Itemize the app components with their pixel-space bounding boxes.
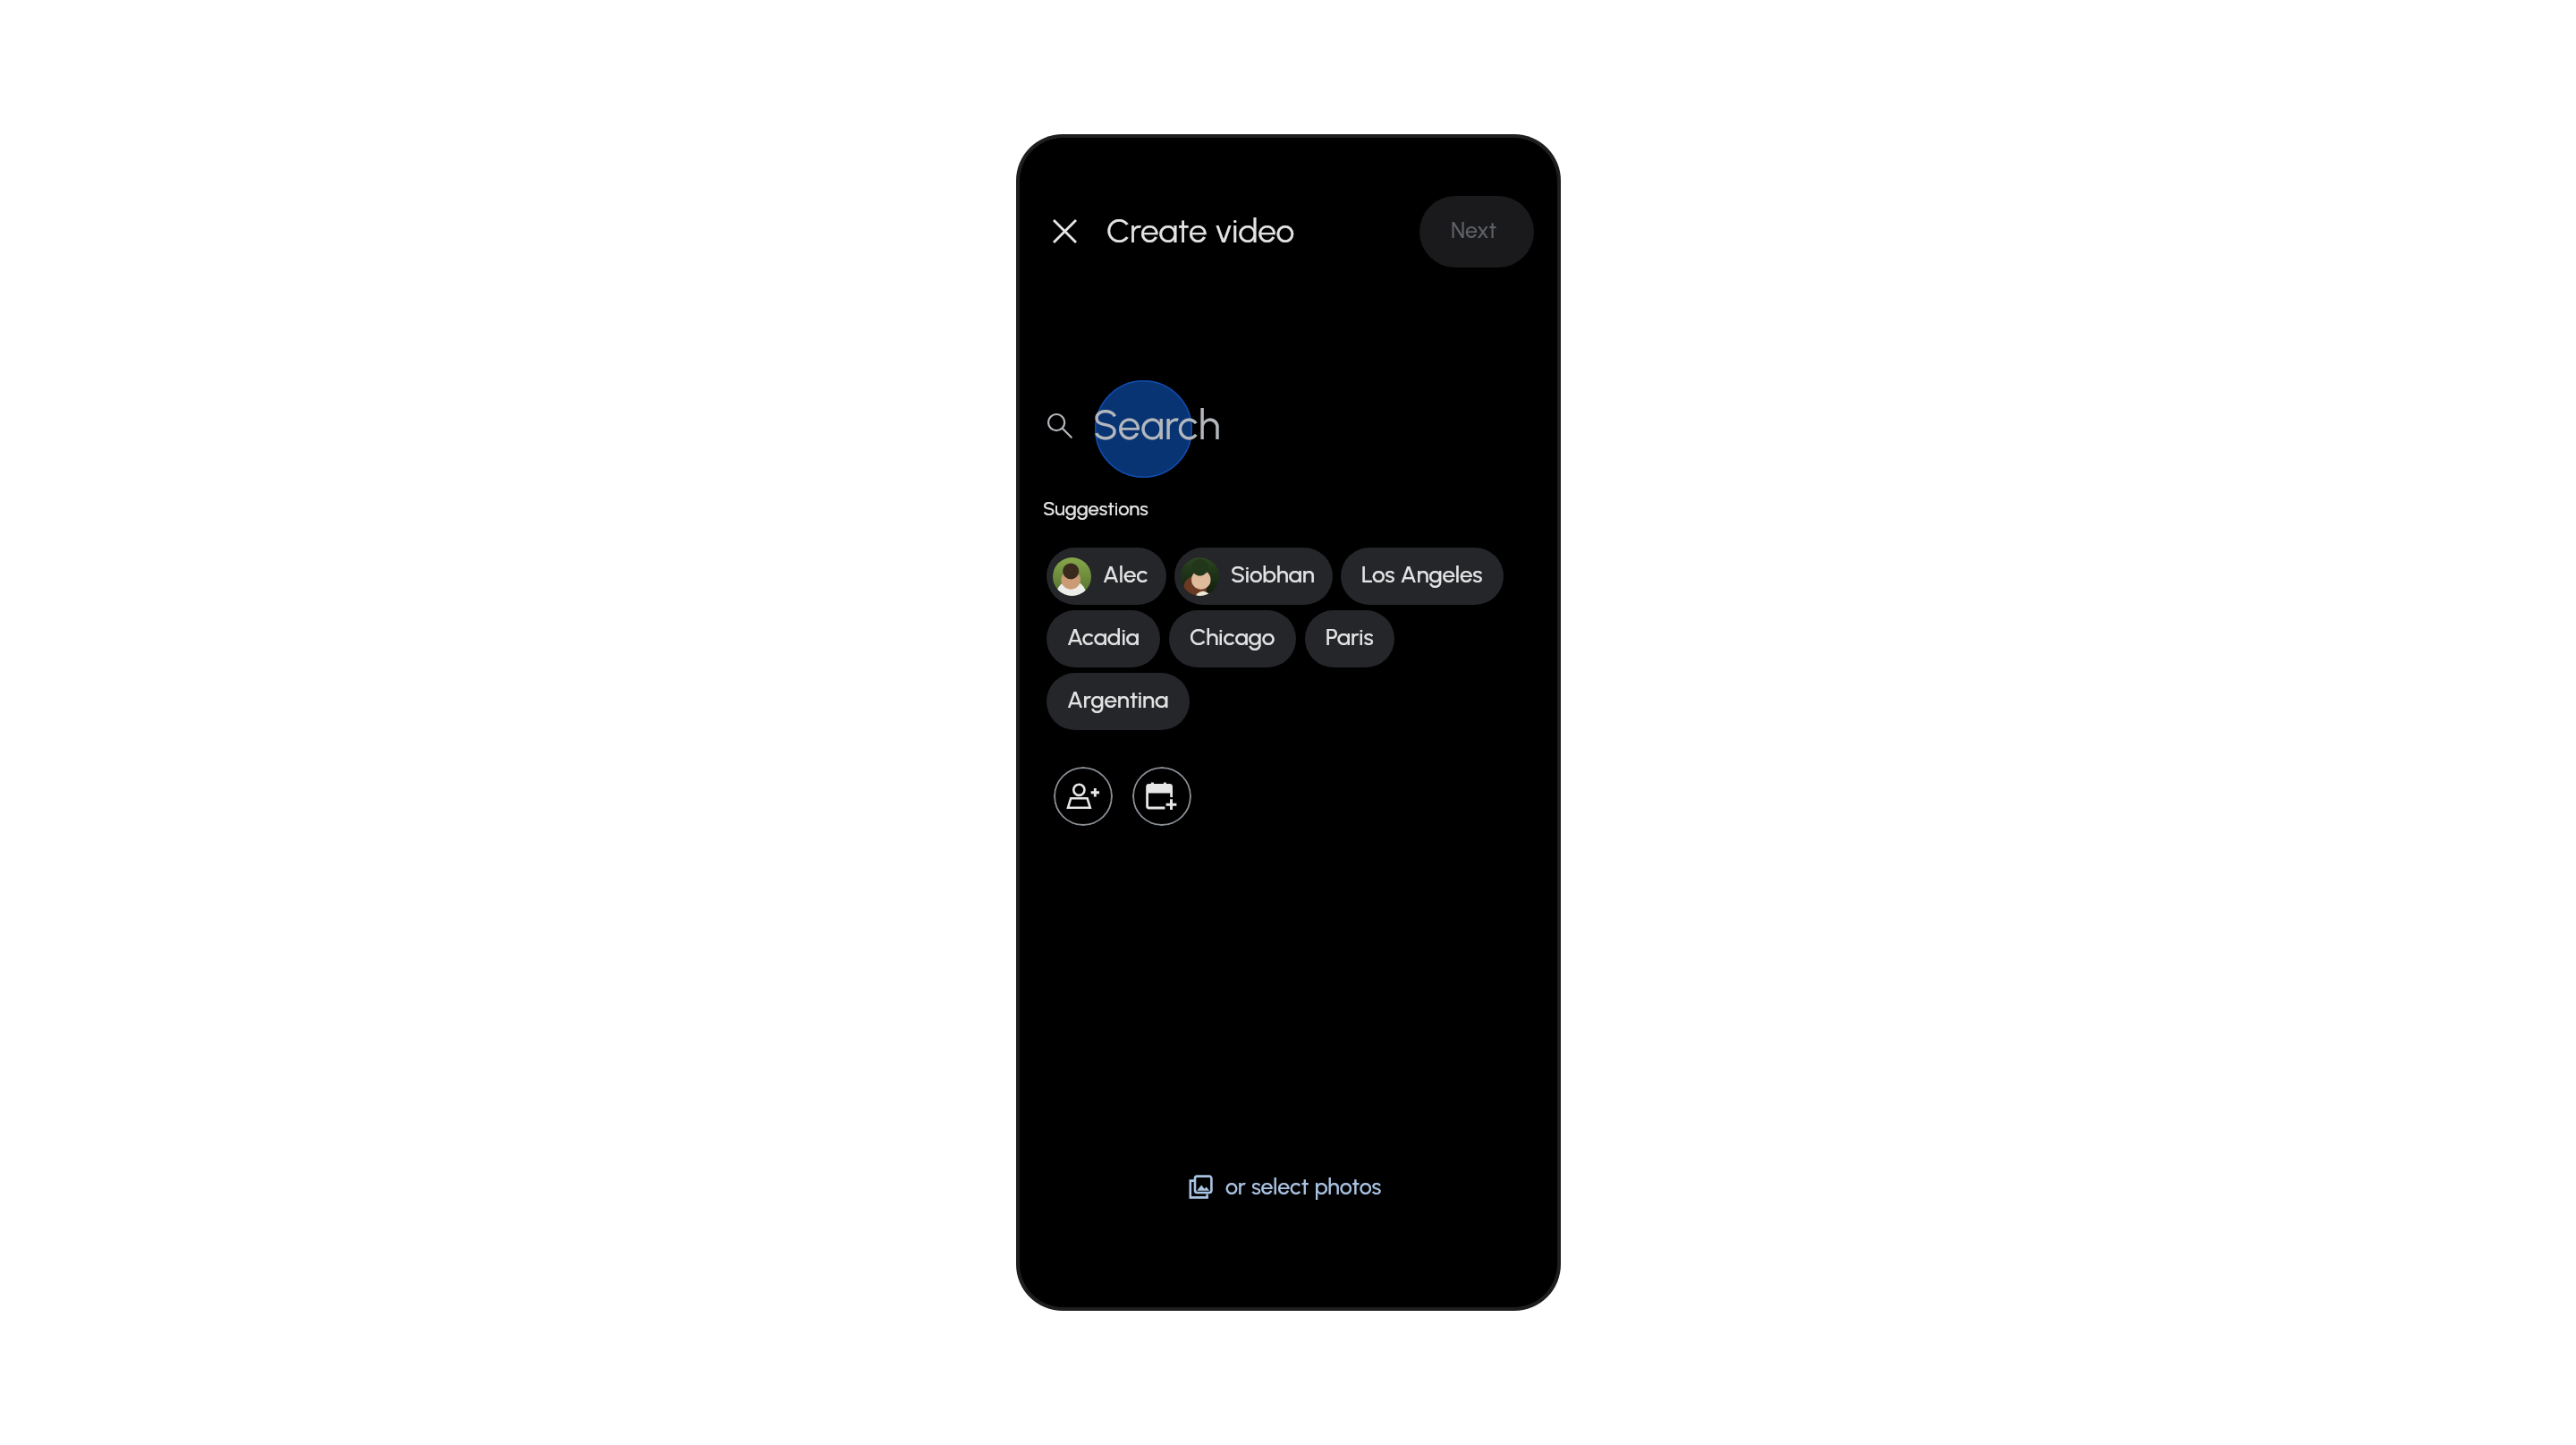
staticText: Search (1093, 400, 1221, 449)
button[interactable]: Los Angeles (1341, 548, 1504, 605)
staticText: Acadia (1067, 623, 1140, 650)
button[interactable]: Alec (1046, 548, 1166, 605)
staticText: Siobhan (1231, 560, 1315, 588)
staticText: Argentina (1067, 685, 1169, 713)
button[interactable]: Siobhan (1174, 548, 1333, 605)
staticText: Los Angeles (1361, 560, 1483, 588)
button[interactable]: Add person (1054, 767, 1113, 826)
button[interactable]: Next (1419, 196, 1534, 268)
button[interactable]: Acadia (1046, 610, 1160, 667)
staticText: Alec (1103, 560, 1148, 588)
staticText: Paris (1326, 623, 1374, 650)
button[interactable]: or select photos (1189, 1173, 1382, 1200)
button[interactable]: Chicago (1169, 610, 1296, 667)
staticText: Chicago (1190, 623, 1275, 650)
button[interactable]: Paris (1305, 610, 1394, 667)
button[interactable]: Search (1035, 389, 1522, 463)
button[interactable]: Create event (1132, 767, 1191, 826)
staticText: or select photos (1225, 1173, 1382, 1200)
button[interactable]: Close (1041, 208, 1088, 254)
button[interactable]: Argentina (1046, 673, 1190, 730)
staticText: Next (1451, 217, 1497, 243)
staticText: Create video (1106, 211, 1295, 251)
staticText: Suggestions (1043, 497, 1148, 520)
